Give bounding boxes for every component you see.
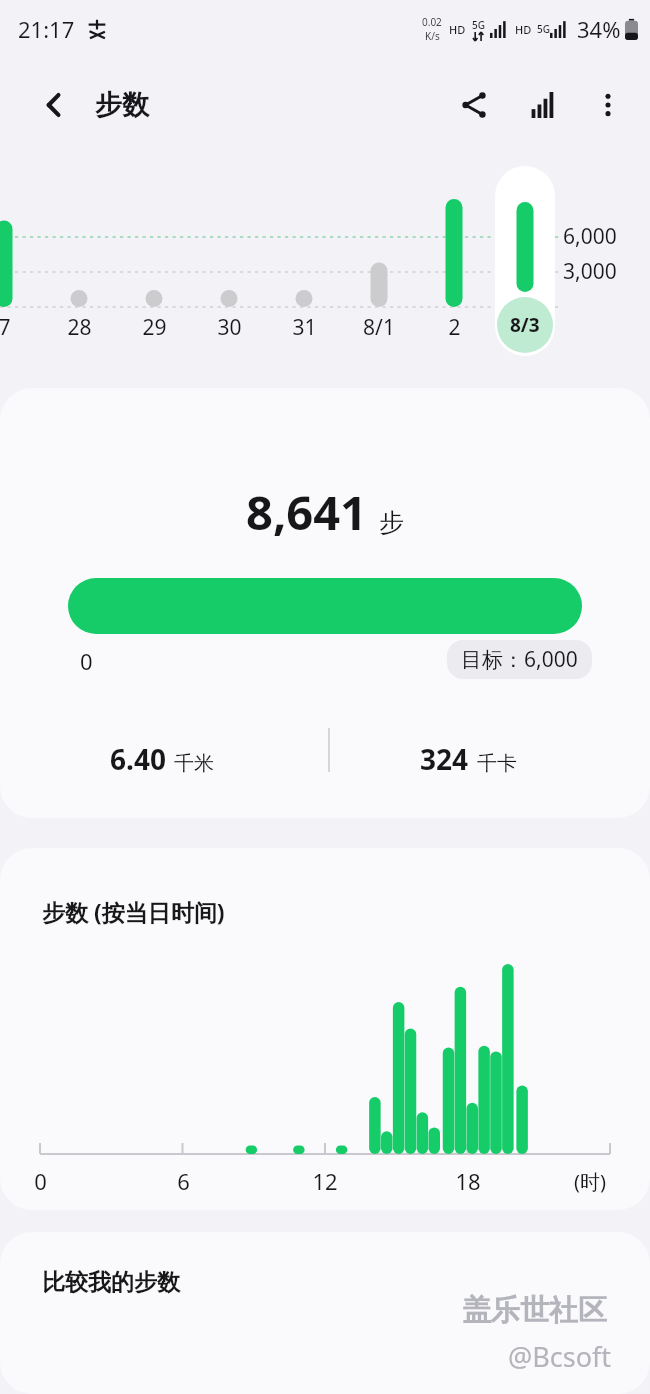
- staticText: @Bcsoft: [508, 1338, 612, 1375]
- staticText: 3,000: [563, 257, 617, 286]
- staticText: 34%: [577, 14, 621, 44]
- staticText: 6,000: [563, 222, 617, 251]
- staticText: 29: [142, 313, 167, 342]
- button[interactable]: 步数 (按当日时间): [0, 848, 650, 1210]
- staticText: 步数: [95, 88, 149, 122]
- button[interactable]: 30: [195, 304, 263, 350]
- staticText: 21:17: [18, 14, 75, 44]
- staticText: 目标：6,000: [461, 645, 578, 674]
- button[interactable]: More options: [580, 77, 636, 133]
- staticText: 2: [448, 313, 461, 342]
- staticText: 千米: [174, 751, 214, 776]
- button[interactable]: 28: [45, 304, 113, 350]
- staticText: 7: [0, 313, 11, 342]
- staticText: 0.02: [422, 15, 442, 29]
- button[interactable]: 31: [270, 304, 338, 350]
- staticText: 0: [34, 1166, 47, 1196]
- button[interactable]: 8/1: [345, 304, 413, 350]
- staticText: 步: [379, 507, 404, 538]
- button[interactable]: 2: [420, 304, 488, 350]
- staticText: 步数 (按当日时间): [42, 896, 225, 927]
- button[interactable]: Back: [28, 79, 80, 131]
- staticText: HD: [449, 22, 466, 37]
- staticText: 30: [217, 313, 242, 342]
- staticText: 8/1: [363, 313, 395, 342]
- staticText: 0: [80, 646, 93, 676]
- staticText: (时): [574, 1168, 606, 1195]
- button[interactable]: Share: [446, 77, 502, 133]
- staticText: 比较我的步数: [42, 1268, 180, 1297]
- staticText: 6.40: [110, 740, 166, 778]
- button[interactable]: 8/3: [495, 166, 555, 356]
- staticText: 18: [455, 1166, 481, 1196]
- button[interactable]: Chart: [514, 77, 570, 133]
- staticText: 5G: [472, 18, 485, 32]
- staticText: HD: [515, 22, 532, 37]
- staticText: 8/3: [510, 312, 540, 338]
- button[interactable]: 比较我的步数: [0, 1232, 650, 1394]
- button[interactable]: 29: [120, 304, 188, 350]
- staticText: 千卡: [477, 751, 517, 776]
- staticText: 8,641: [246, 480, 367, 544]
- staticText: 盖乐世社区: [462, 1292, 607, 1329]
- button[interactable]: 8,641: [0, 388, 650, 818]
- staticText: 31: [292, 313, 317, 342]
- staticText: 12: [312, 1166, 338, 1196]
- staticText: 28: [67, 313, 92, 342]
- staticText: 6: [177, 1166, 190, 1196]
- staticText: K/s: [425, 29, 440, 43]
- staticText: 5G: [537, 22, 550, 36]
- button[interactable]: 7: [0, 304, 38, 350]
- staticText: 324: [420, 740, 469, 778]
